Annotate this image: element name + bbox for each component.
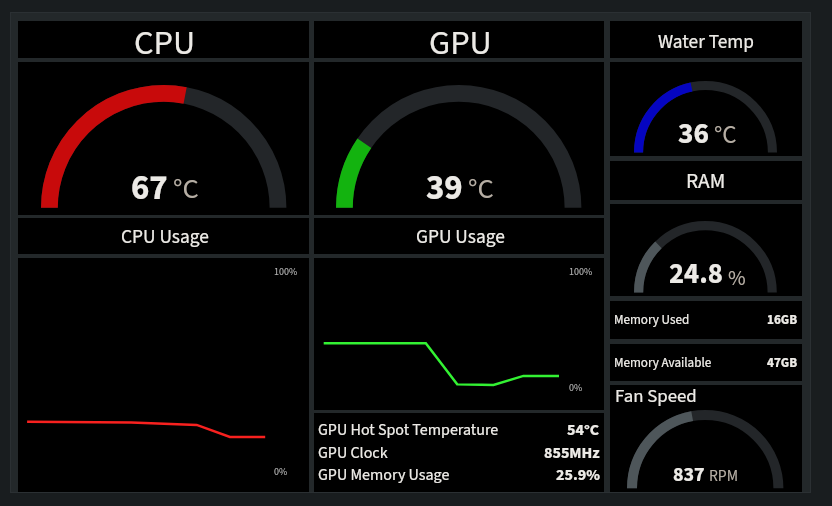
staticText: Memory Available	[614, 354, 712, 373]
button[interactable]: 24.8	[610, 204, 802, 296]
staticText: °C	[173, 169, 199, 210]
staticText: Memory Used	[614, 311, 690, 330]
staticText: CPU Usage	[121, 223, 209, 251]
staticText: Water Temp	[658, 28, 755, 55]
staticText: 837	[673, 461, 705, 489]
button[interactable]: GPU Usage	[314, 218, 604, 254]
staticText: 67	[131, 163, 168, 213]
button[interactable]: 39	[314, 62, 604, 215]
staticText: 100%	[569, 265, 593, 279]
staticText: GPU Clock	[318, 442, 388, 465]
staticText: GPU Hot Spot Temperature	[318, 419, 499, 442]
staticText: 16GB	[767, 311, 798, 330]
staticText: 25.9%	[556, 464, 600, 487]
staticText: Fan Speed	[615, 383, 697, 410]
staticText: GPU	[429, 19, 492, 56]
button[interactable]: Fan Speed	[610, 385, 802, 492]
staticText: 36	[678, 113, 709, 155]
button[interactable]: RAM	[610, 161, 802, 200]
staticText: 0%	[569, 381, 583, 395]
button[interactable]: GPU	[314, 21, 604, 58]
staticText: 855MHz	[544, 442, 600, 465]
staticText: 54°C	[567, 419, 600, 442]
staticText: 39	[426, 163, 463, 213]
button[interactable]: 36	[610, 62, 802, 156]
staticText: 100%	[274, 265, 298, 279]
button[interactable]: Memory Used	[610, 301, 802, 339]
staticText: GPU Memory Usage	[318, 464, 450, 487]
button[interactable]: CPU	[18, 21, 309, 58]
staticText: RPM	[709, 465, 739, 487]
button[interactable]: 67	[18, 62, 309, 215]
staticText: GPU Usage	[416, 223, 505, 251]
button[interactable]: 100%	[314, 258, 604, 410]
staticText: °C	[714, 117, 737, 153]
staticText: °C	[468, 169, 494, 210]
staticText: %	[728, 263, 746, 293]
button[interactable]: Memory Available	[610, 344, 802, 381]
button[interactable]: CPU Usage	[18, 218, 309, 254]
button[interactable]: GPU Hot Spot Temperature	[314, 413, 604, 492]
staticText: CPU	[134, 19, 196, 56]
button[interactable]: Water Temp	[610, 21, 802, 58]
button[interactable]: 100%	[18, 258, 309, 492]
staticText: 24.8	[669, 254, 723, 295]
staticText: RAM	[686, 166, 726, 196]
staticText: 47GB	[767, 354, 798, 373]
staticText: 0%	[274, 465, 288, 479]
